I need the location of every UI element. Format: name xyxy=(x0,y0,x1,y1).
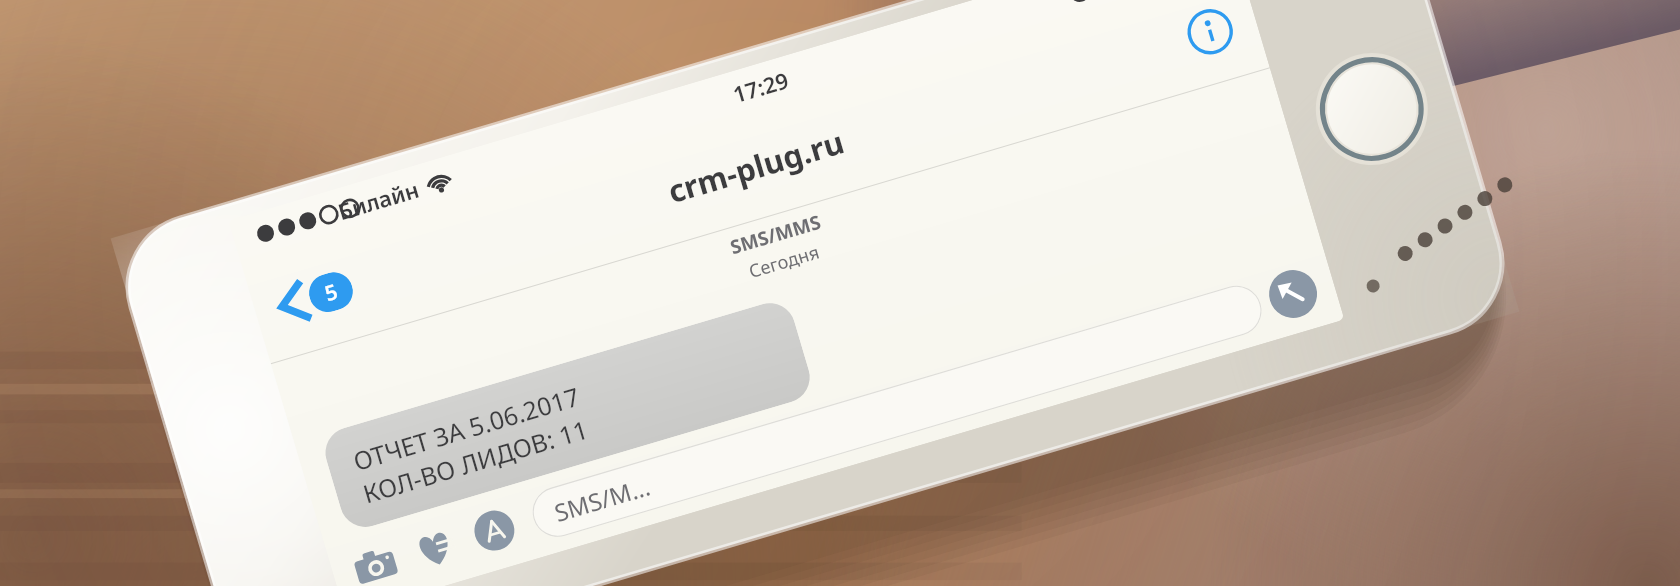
button[interactable]: Digital Touch xyxy=(406,520,464,577)
staticText: ОТЧЕТ ЗА 5.06.2017 xyxy=(349,379,583,478)
staticText: 5 xyxy=(321,277,342,308)
staticText: Сегодня xyxy=(746,239,823,284)
staticText: КОЛ-ВО ЛИДОВ: 11 xyxy=(359,412,591,509)
staticText: crm-plug.ru xyxy=(662,120,849,212)
staticText: SMS/MMS xyxy=(727,209,825,260)
button[interactable]: Back, 5 unread xyxy=(265,256,366,337)
button[interactable]: ОТЧЕТ ЗА 5.06.2017 xyxy=(319,297,816,533)
button[interactable]: App Store xyxy=(466,502,523,559)
button[interactable]: Send xyxy=(1263,264,1323,324)
button[interactable]: Camera xyxy=(347,537,404,586)
button[interactable]: Home xyxy=(1302,39,1441,179)
button[interactable]: SMS/M... xyxy=(527,280,1268,543)
staticText: Билайн xyxy=(334,173,423,226)
staticText: 17:29 xyxy=(729,64,792,109)
staticText: SMS/M... xyxy=(550,469,654,529)
button[interactable]: Details xyxy=(1182,3,1239,60)
